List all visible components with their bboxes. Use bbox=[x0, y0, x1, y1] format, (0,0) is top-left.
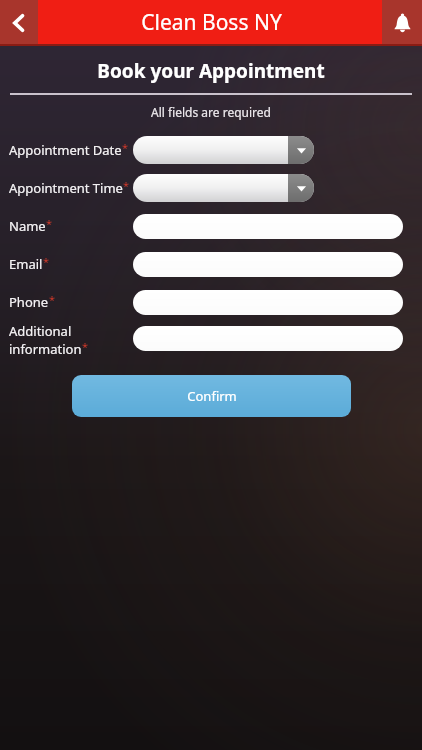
staticText: * bbox=[82, 339, 89, 354]
button[interactable]: Confirm bbox=[72, 375, 351, 417]
button[interactable]: Text input bbox=[133, 214, 403, 239]
staticText: Appointment Date bbox=[9, 141, 122, 159]
staticText: * bbox=[122, 140, 129, 155]
staticText: Name bbox=[9, 217, 46, 235]
staticText: information bbox=[9, 340, 82, 358]
button[interactable]: Notifications bbox=[382, 0, 422, 46]
staticText: All fields are required bbox=[0, 104, 422, 120]
staticText: * bbox=[43, 254, 50, 269]
staticText: Book your Appointment bbox=[0, 58, 422, 84]
staticText: Appointment Time bbox=[9, 179, 123, 197]
button[interactable]: Open dropdown bbox=[133, 174, 314, 202]
staticText: Email bbox=[9, 255, 43, 273]
staticText: Confirm bbox=[187, 387, 237, 405]
staticText: Phone bbox=[9, 293, 49, 311]
staticText: Additional bbox=[9, 322, 72, 340]
staticText: * bbox=[123, 178, 130, 193]
staticText: * bbox=[46, 216, 53, 231]
button[interactable]: Open dropdown bbox=[133, 136, 314, 164]
button[interactable]: Text input bbox=[133, 252, 403, 277]
button[interactable]: Text input bbox=[133, 290, 403, 315]
button[interactable]: Text input bbox=[133, 326, 403, 351]
button[interactable]: Back bbox=[0, 0, 38, 46]
staticText: Clean Boss NY bbox=[141, 8, 282, 37]
staticText: * bbox=[49, 292, 56, 307]
